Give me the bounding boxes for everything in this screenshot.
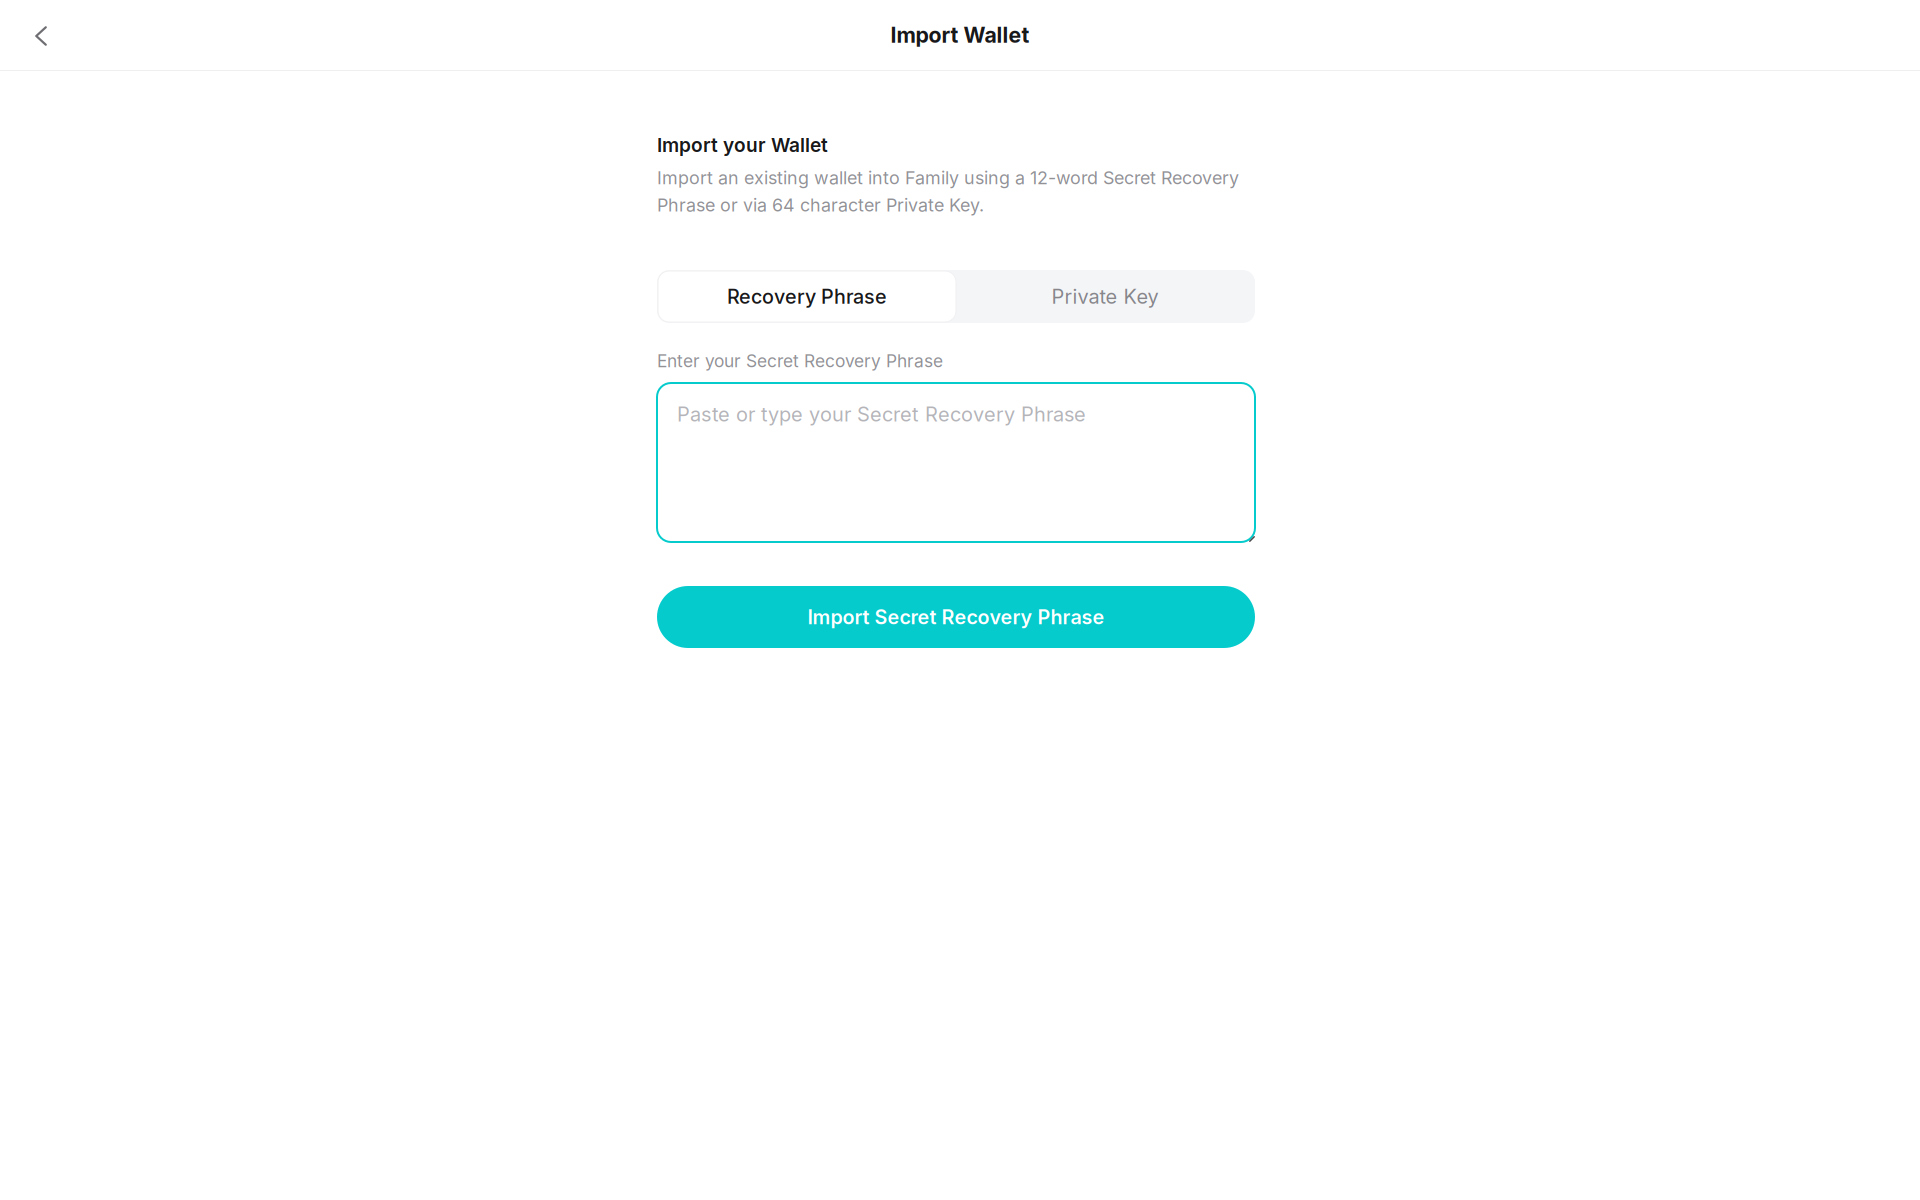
staticText: Enter your Secret Recovery Phrase bbox=[657, 350, 943, 371]
staticText: Paste or type your Secret Recovery Phras… bbox=[677, 402, 1086, 426]
button[interactable]: Paste or type your Secret Recovery Phras… bbox=[657, 383, 1255, 542]
staticText: Recovery Phrase bbox=[727, 285, 887, 308]
staticText: Import Wallet bbox=[890, 22, 1029, 48]
button[interactable]: Private Key bbox=[956, 271, 1254, 322]
button[interactable]: Back bbox=[19, 14, 63, 58]
staticText: Import an existing wallet into Family us… bbox=[657, 167, 1239, 216]
button[interactable]: Recovery Phrase bbox=[658, 271, 956, 322]
button[interactable]: Import Secret Recovery Phrase bbox=[657, 586, 1255, 648]
staticText: Import your Wallet bbox=[657, 133, 828, 157]
staticText: Private Key bbox=[1051, 284, 1158, 309]
staticText: Import Secret Recovery Phrase bbox=[807, 605, 1104, 629]
